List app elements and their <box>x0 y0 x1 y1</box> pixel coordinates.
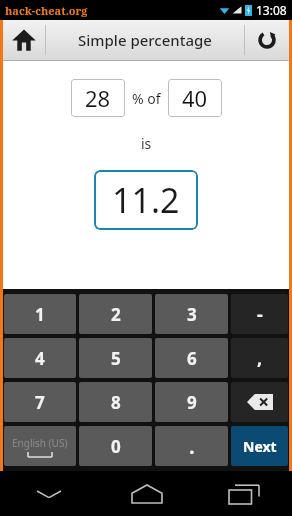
staticText: 11.2 <box>112 177 180 223</box>
button[interactable]: Delete <box>231 382 288 422</box>
staticText: English (US) <box>12 436 68 450</box>
button[interactable]: 9 <box>155 382 228 422</box>
staticText: Simple percentage <box>78 30 212 50</box>
staticText: - <box>257 302 263 327</box>
button[interactable]: 5 <box>79 338 152 378</box>
staticText: 1 <box>35 303 45 326</box>
staticText: Next <box>243 437 277 456</box>
button[interactable]: Recent apps <box>195 471 292 516</box>
staticText: 7 <box>35 391 45 414</box>
button[interactable]: 4 <box>4 338 76 378</box>
button[interactable]: Simple percentage <box>46 20 244 60</box>
staticText: hack-cheat.org <box>5 3 88 18</box>
button[interactable]: 1 <box>4 294 76 334</box>
button[interactable]: English (US) <box>4 426 76 466</box>
staticText: 8 <box>111 391 121 414</box>
button[interactable]: 2 <box>79 294 152 334</box>
staticText: 40 <box>182 83 208 113</box>
button[interactable]: Refresh <box>245 20 289 60</box>
button[interactable]: Next <box>231 426 288 466</box>
button[interactable]: 3 <box>155 294 228 334</box>
staticText: % of <box>132 89 161 108</box>
button[interactable]: 11.2 <box>94 170 198 230</box>
button[interactable]: 28 <box>71 79 125 117</box>
staticText: , <box>257 346 263 371</box>
staticText: 28 <box>85 83 111 113</box>
staticText: 5 <box>111 347 121 370</box>
button[interactable]: 40 <box>168 79 222 117</box>
button[interactable]: 8 <box>79 382 152 422</box>
staticText: is <box>141 134 152 153</box>
staticText: 13:08 <box>256 2 287 18</box>
staticText: 4 <box>35 347 45 370</box>
button[interactable]: 7 <box>4 382 76 422</box>
staticText: 9 <box>187 391 197 414</box>
staticText: 2 <box>111 303 121 326</box>
staticText: 3 <box>187 303 197 326</box>
button[interactable]: Home <box>3 20 45 60</box>
button[interactable]: - <box>231 294 288 334</box>
button[interactable]: . <box>155 426 228 466</box>
staticText: 6 <box>187 347 197 370</box>
button[interactable]: , <box>231 338 288 378</box>
button[interactable]: 6 <box>155 338 228 378</box>
staticText: . <box>189 433 195 460</box>
button[interactable]: Home <box>98 471 195 516</box>
staticText: 0 <box>111 435 121 458</box>
button[interactable]: Hide keyboard <box>0 471 98 516</box>
button[interactable]: 0 <box>79 426 152 466</box>
